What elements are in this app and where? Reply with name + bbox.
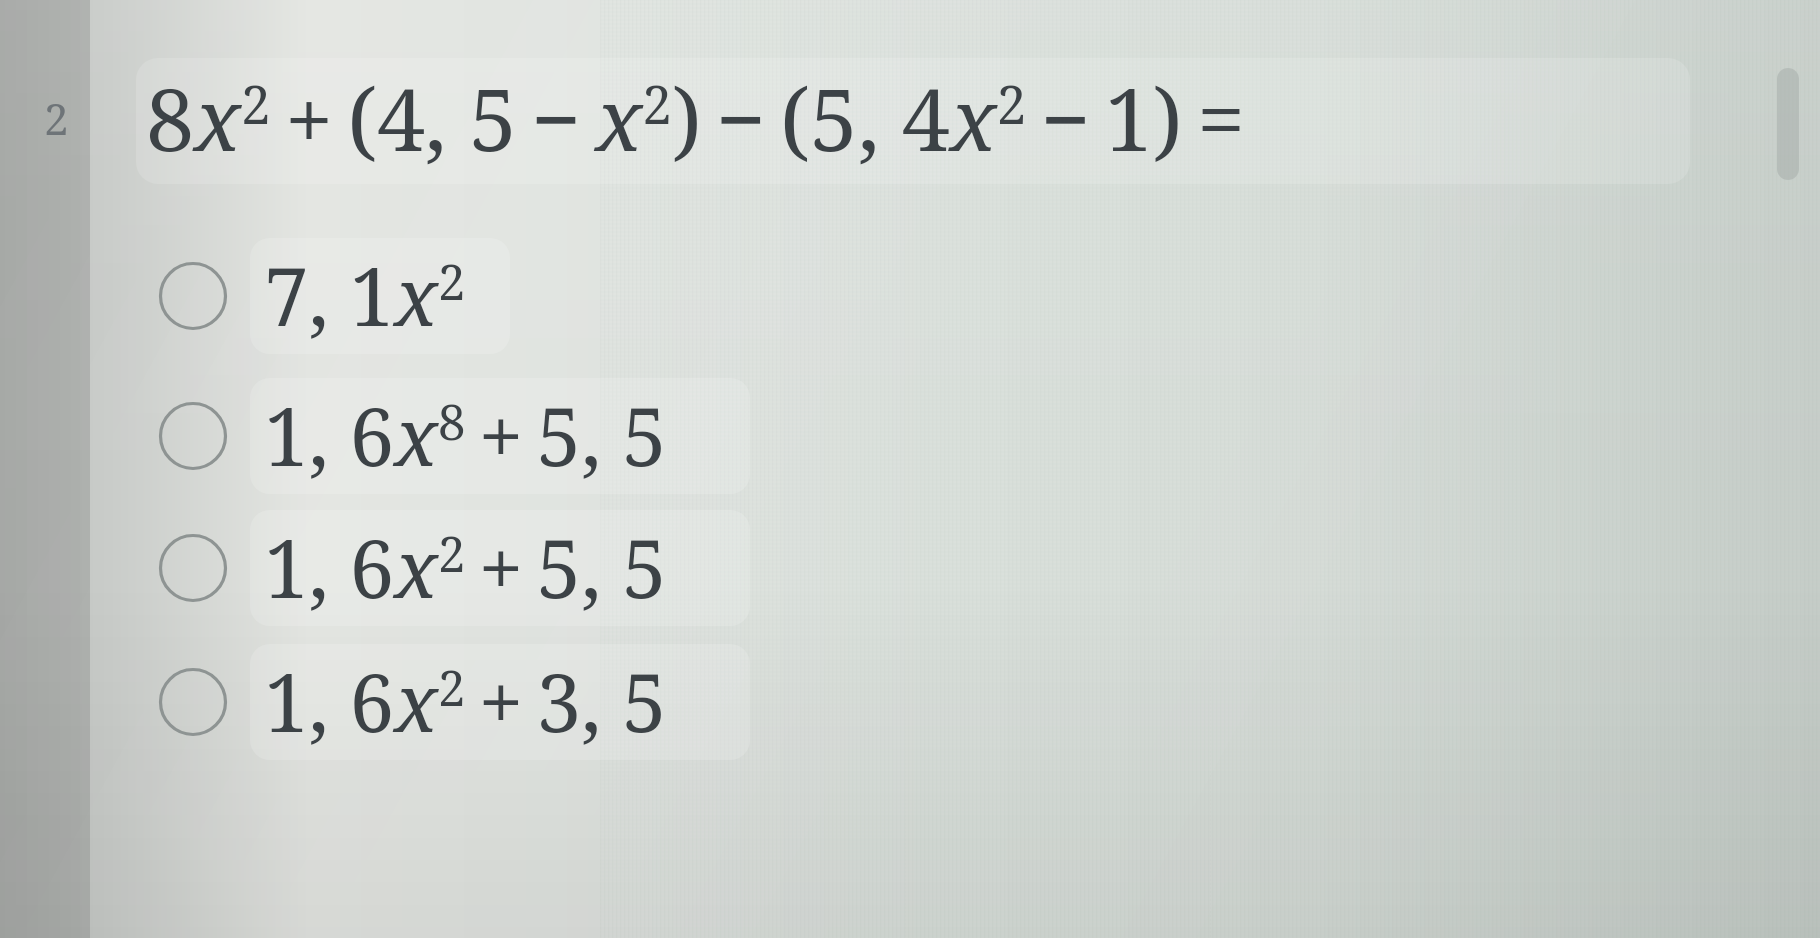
staticText: 1, 6x2 + 3, 5 bbox=[264, 646, 667, 755]
other: Select answer bbox=[150, 659, 236, 745]
button[interactable]: Select answer bbox=[150, 638, 790, 766]
other: Select answer bbox=[150, 253, 236, 339]
button[interactable]: Select answer bbox=[150, 504, 790, 632]
button[interactable]: Select answer bbox=[150, 232, 550, 360]
staticText: 1, 6x8 + 5, 5 bbox=[264, 380, 667, 489]
staticText: 7, 1x2 bbox=[264, 240, 466, 349]
other: Select answer bbox=[150, 525, 236, 611]
button[interactable]: Select answer bbox=[150, 372, 790, 500]
button[interactable]: 8x2 + (4, 5 − x2) − (5, 4x2 − 1) = bbox=[136, 58, 1690, 184]
staticText: 2 bbox=[44, 88, 69, 148]
other: Select answer bbox=[150, 393, 236, 479]
staticText: 8x2 + (4, 5 − x2) − (5, 4x2 − 1) = bbox=[146, 59, 1260, 176]
staticText: 1, 6x2 + 5, 5 bbox=[264, 512, 667, 621]
